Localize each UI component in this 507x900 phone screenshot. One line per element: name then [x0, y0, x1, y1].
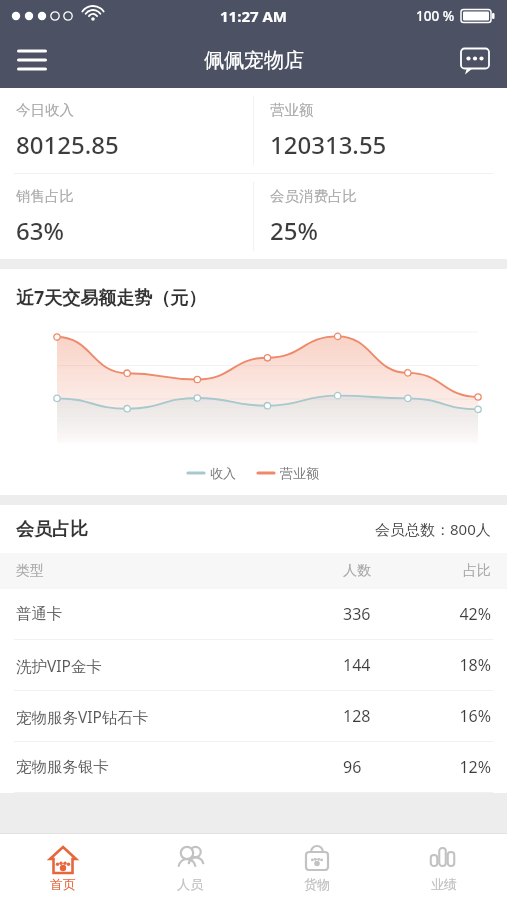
button[interactable]: Messages [451, 36, 499, 84]
button[interactable]: 营业额 [254, 88, 507, 173]
staticText: 首页 [50, 876, 76, 892]
staticText: 类型 [16, 562, 343, 580]
button[interactable]: 洗护VIP金卡 [0, 640, 507, 691]
staticText: 营业额 [280, 465, 319, 481]
button[interactable]: 宠物服务VIP钻石卡 [0, 691, 507, 742]
staticText: 18% [429, 654, 491, 676]
staticText: 占比 [429, 562, 491, 580]
staticText: 144 [343, 654, 429, 676]
staticText: 80125.85 [16, 128, 119, 161]
staticText: 42% [429, 603, 491, 625]
button[interactable]: 货物 [253, 834, 380, 900]
staticText: 会员总数：800人 [375, 519, 491, 539]
staticText: 宠物服务VIP钻石卡 [16, 706, 343, 727]
staticText: 会员消费占比 [270, 187, 357, 205]
staticText: 16% [429, 705, 491, 727]
button[interactable]: 人员 [126, 834, 253, 900]
button[interactable]: 普通卡 [0, 589, 507, 640]
staticText: 100 % [416, 7, 455, 25]
staticText: 普通卡 [16, 604, 343, 624]
button[interactable]: 业绩 [380, 834, 507, 900]
staticText: 会员占比 [16, 518, 88, 541]
button[interactable]: 会员消费占比 [254, 174, 507, 259]
staticText: 人员 [177, 876, 203, 892]
staticText: 11:27 AM [220, 6, 287, 26]
staticText: 128 [343, 705, 429, 727]
staticText: 佩佩宠物店 [204, 48, 304, 73]
staticText: 25% [270, 214, 318, 247]
button[interactable]: 宠物服务银卡 [0, 742, 507, 793]
staticText: 营业额 [270, 101, 314, 119]
staticText: 收入 [210, 465, 236, 481]
staticText: 近7天交易额走势（元） [16, 285, 207, 310]
button[interactable]: 今日收入 [0, 88, 253, 173]
staticText: 336 [343, 603, 429, 625]
staticText: 120313.55 [270, 128, 387, 161]
button[interactable]: Menu [6, 34, 58, 86]
staticText: 洗护VIP金卡 [16, 655, 343, 676]
staticText: 12% [429, 756, 491, 778]
button[interactable]: 销售占比 [0, 174, 253, 259]
staticText: 63% [16, 214, 64, 247]
staticText: 宠物服务银卡 [16, 757, 343, 777]
button[interactable]: 首页 [0, 834, 126, 900]
staticText: 业绩 [431, 876, 457, 892]
staticText: 货物 [304, 876, 330, 892]
staticText: 96 [343, 756, 429, 778]
staticText: 今日收入 [16, 101, 74, 119]
staticText: 销售占比 [16, 187, 74, 205]
staticText: 人数 [343, 562, 429, 580]
